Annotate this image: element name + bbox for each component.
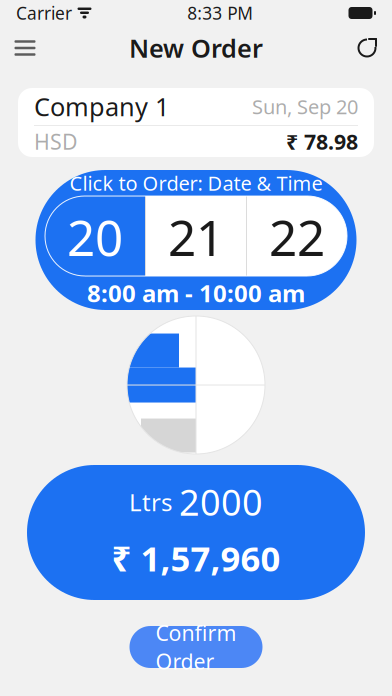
staticText: Click to Order: Date & Time	[69, 170, 322, 196]
staticText: 8:33 PM	[187, 1, 253, 24]
button[interactable]: Ltrs	[27, 465, 365, 600]
staticText: HSD	[34, 127, 78, 156]
staticText: 2000	[179, 478, 263, 526]
staticText: 20	[67, 204, 123, 270]
staticText: Ltrs	[129, 486, 172, 518]
button[interactable]: Refresh	[343, 26, 391, 70]
button[interactable]: Menu	[1, 26, 49, 70]
staticText: 22	[269, 204, 325, 270]
staticText: Carrier	[16, 1, 72, 24]
staticText: Mon	[178, 278, 213, 299]
staticText: 8:00 am - 10:00 am	[87, 277, 305, 309]
staticText: ₹ 78.98	[286, 127, 358, 156]
button[interactable]: Click to Order: Date & Time	[35, 170, 356, 310]
staticText: Confirm Order	[155, 619, 236, 675]
staticText: Sep	[281, 173, 312, 196]
button[interactable]: Confirm Order	[129, 626, 262, 668]
staticText: ₹ 1,57,960	[111, 535, 280, 581]
staticText: Company 1	[34, 90, 169, 123]
staticText: Sun	[80, 278, 109, 299]
staticText: 21	[168, 204, 224, 270]
staticText: Sun, Sep 20	[252, 93, 358, 120]
staticText: Tue	[283, 278, 310, 299]
staticText: Sep	[180, 173, 211, 196]
staticText: Sep	[79, 173, 110, 196]
staticText: New Order	[129, 31, 263, 65]
